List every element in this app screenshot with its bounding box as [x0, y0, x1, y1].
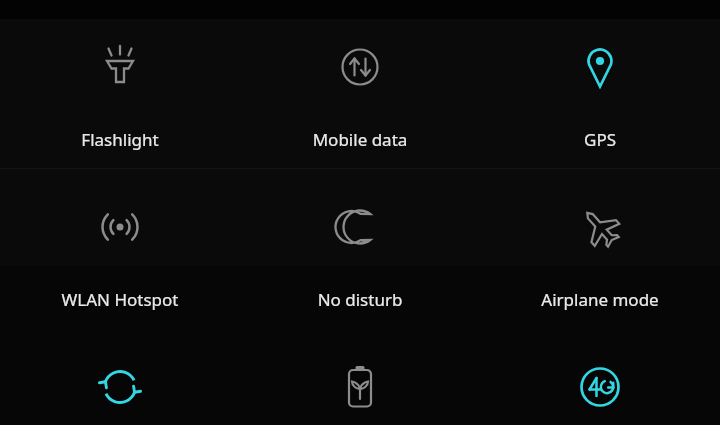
- button[interactable]: No disturb: [240, 180, 480, 328]
- staticText: System: [95, 125, 167, 154]
- staticText: No disturb: [240, 288, 480, 311]
- staticText: WLAN Hotspot: [0, 288, 240, 311]
- staticText: Navigation bar: [95, 52, 242, 81]
- button[interactable]: Airplane mode: [480, 180, 720, 328]
- staticText: Language & input: [95, 305, 272, 334]
- staticText: Airplane mode: [480, 288, 720, 311]
- staticText: Date & time: [95, 212, 213, 241]
- button[interactable]: Mobile data: [240, 20, 480, 168]
- staticText: Mobile data: [240, 128, 480, 151]
- button[interactable]: Flashlight: [0, 20, 240, 168]
- staticText: Accessibility: [95, 395, 214, 424]
- button[interactable]: WLAN Hotspot: [0, 180, 240, 328]
- button[interactable]: Battery saver: [240, 340, 480, 425]
- button[interactable]: 4G: [480, 340, 720, 425]
- staticText: GPS: [480, 128, 720, 151]
- button[interactable]: GPS: [480, 20, 720, 168]
- staticText: Flashlight: [0, 128, 240, 151]
- button[interactable]: Auto rotate: [0, 340, 240, 425]
